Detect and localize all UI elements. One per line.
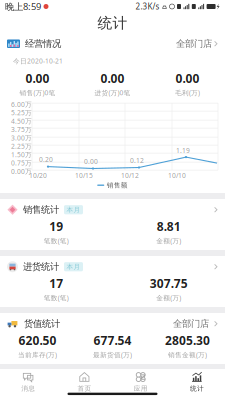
staticText: 本月 xyxy=(66,263,80,271)
staticText: 307.75 xyxy=(150,275,188,291)
staticText: 2.3K/s xyxy=(135,1,159,12)
staticText: 10/20 xyxy=(29,171,47,180)
staticText: 19 xyxy=(49,218,63,234)
staticText: 6.00万 xyxy=(11,100,32,109)
button[interactable]: 首页 xyxy=(56,371,112,393)
staticText: 销售额 xyxy=(107,181,128,189)
button[interactable]: 统计 xyxy=(169,371,225,393)
staticText: 全部门店 xyxy=(176,38,212,49)
button[interactable]: 销售统计 xyxy=(0,199,225,250)
staticText: 0.00 xyxy=(100,70,124,86)
staticText: 本月 xyxy=(66,206,80,214)
button[interactable]: 应用 xyxy=(112,371,169,393)
staticText: 货值统计 xyxy=(24,318,60,329)
staticText: 0.00 xyxy=(175,70,199,86)
staticText: 10/12 xyxy=(121,171,139,180)
staticText: 0.00 xyxy=(25,70,49,86)
staticText: 消息 xyxy=(21,384,35,393)
staticText: 销售统计 xyxy=(23,204,59,215)
staticText: 2805.30 xyxy=(165,332,210,348)
staticText: 1.50万 xyxy=(11,150,32,159)
staticText: 0.20 xyxy=(39,155,53,164)
staticText: 2.25万 xyxy=(11,142,32,151)
button[interactable]: 货值统计 xyxy=(0,313,225,364)
staticText: 10/10 xyxy=(168,171,186,180)
staticText: 毛利(万) xyxy=(175,88,200,97)
staticText: 3.00万 xyxy=(11,133,32,142)
staticText: 0.12 xyxy=(130,156,144,165)
staticText: 最新货值(万) xyxy=(93,350,132,359)
staticText: 0.75万 xyxy=(11,158,32,167)
button[interactable]: 进货统计 xyxy=(0,256,225,307)
staticText: 金额(万) xyxy=(156,236,181,245)
staticText: 全部门店 xyxy=(173,318,209,329)
staticText: 677.54 xyxy=(93,332,131,348)
button[interactable]: 全部门店 xyxy=(176,38,218,49)
staticText: 当前库存(万) xyxy=(18,350,57,359)
staticText: 进货统计 xyxy=(23,261,59,272)
staticText: 笔数(笔) xyxy=(44,293,69,302)
staticText: 0.00 xyxy=(84,157,98,166)
staticText: 笔数(笔) xyxy=(44,236,69,245)
staticText: 5.25万 xyxy=(11,108,32,117)
staticText: 金额(万) xyxy=(156,293,181,302)
staticText: 应用 xyxy=(134,384,148,393)
staticText: 经营情况 xyxy=(25,38,61,49)
staticText: 1.19 xyxy=(176,146,190,155)
staticText: 今日2020-10-21 xyxy=(13,56,63,65)
staticText: 晚上8:59 xyxy=(5,0,41,13)
staticText: 17 xyxy=(49,275,63,291)
staticText: 10/15 xyxy=(75,171,93,180)
staticText: 首页 xyxy=(77,384,91,393)
staticText: 销售金额(万) xyxy=(168,350,207,359)
staticText: 0.00万 xyxy=(11,167,32,176)
staticText: 3.75万 xyxy=(11,125,32,134)
staticText: 620.50 xyxy=(18,332,56,348)
staticText: 统计 xyxy=(190,384,204,393)
staticText: 销售(万)0笔 xyxy=(19,88,55,97)
staticText: 统计 xyxy=(97,14,127,32)
staticText: 8.81 xyxy=(157,218,181,234)
staticText: 进货(万)0笔 xyxy=(94,88,130,97)
button[interactable]: 消息 xyxy=(0,371,56,393)
staticText: 4.50万 xyxy=(11,117,32,126)
